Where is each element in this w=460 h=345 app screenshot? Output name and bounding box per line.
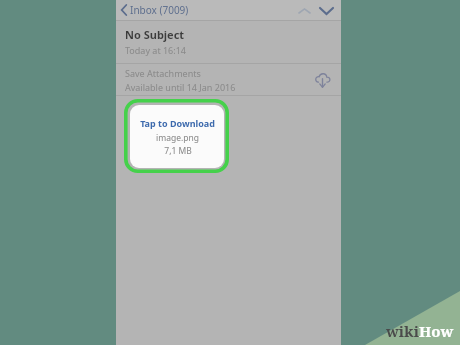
button[interactable]: Next message bbox=[316, 1, 336, 19]
staticText: wiki bbox=[386, 321, 419, 341]
button[interactable]: Save Attachments bbox=[116, 64, 341, 95]
button[interactable]: Tap to Download bbox=[124, 99, 229, 173]
staticText: Today at 16:14 bbox=[125, 44, 186, 56]
button[interactable]: Previous message bbox=[294, 1, 314, 19]
other: Download attachments bbox=[312, 70, 332, 90]
staticText: Available until 14 Jan 2016 bbox=[125, 81, 236, 93]
staticText: Inbox (7009) bbox=[130, 3, 189, 17]
staticText: How bbox=[419, 321, 454, 341]
staticText: Save Attachments bbox=[125, 67, 201, 79]
staticText: No Subject bbox=[125, 27, 185, 42]
staticText: image.png bbox=[156, 132, 199, 144]
staticText: Tap to Download bbox=[140, 117, 215, 129]
button[interactable]: Inbox (7009) bbox=[116, 0, 195, 20]
staticText: 7,1 MB bbox=[164, 145, 192, 157]
